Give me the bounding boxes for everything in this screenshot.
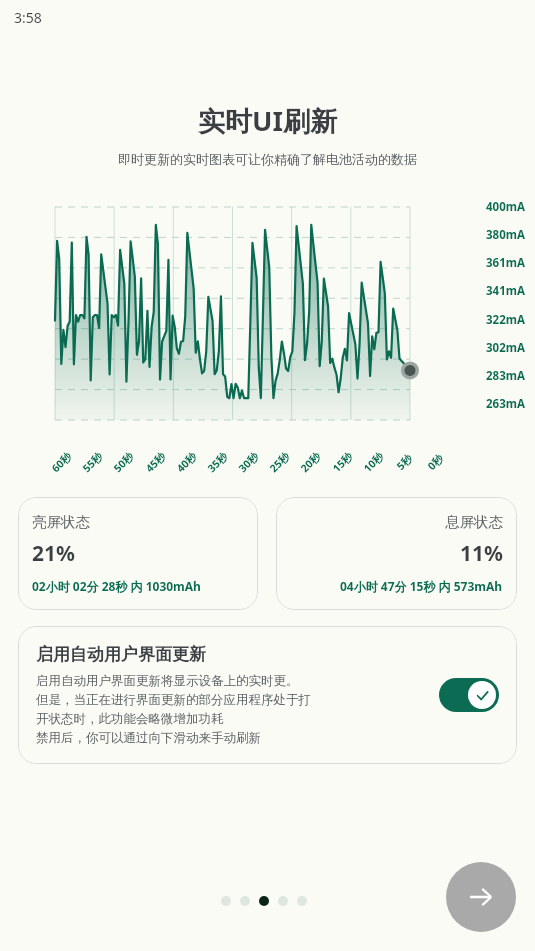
staticText: 5秒 bbox=[393, 451, 415, 473]
staticText: 341mA bbox=[486, 283, 525, 299]
button[interactable]: 息屏状态 bbox=[276, 497, 517, 610]
staticText: 283mA bbox=[486, 368, 525, 384]
staticText: 04小时 47分 15秒 内 573mAh bbox=[340, 578, 503, 594]
staticText: 263mA bbox=[486, 396, 525, 412]
staticText: 0秒 bbox=[424, 451, 446, 473]
button[interactable]: Next bbox=[446, 862, 516, 932]
button[interactable]: 亮屏状态 bbox=[18, 497, 258, 610]
staticText: 361mA bbox=[486, 255, 525, 271]
staticText: 45秒 bbox=[142, 449, 169, 475]
staticText: 302mA bbox=[486, 340, 525, 356]
staticText: 15秒 bbox=[329, 449, 356, 475]
staticText: 启用自动用户界面更新 bbox=[36, 644, 206, 665]
staticText: 21% bbox=[32, 539, 75, 568]
button[interactable]: Toggle automatic UI updates bbox=[439, 678, 499, 712]
staticText: 380mA bbox=[486, 227, 525, 243]
staticText: 20秒 bbox=[297, 449, 324, 475]
staticText: 50秒 bbox=[110, 449, 137, 475]
staticText: 02小时 02分 28秒 内 1030mAh bbox=[32, 578, 201, 594]
staticText: 35秒 bbox=[204, 449, 231, 475]
staticText: 40秒 bbox=[173, 449, 200, 475]
staticText: 60秒 bbox=[48, 449, 75, 475]
staticText: 30秒 bbox=[235, 449, 262, 475]
staticText: 启用自动用户界面更新将显示设备上的实时更。 但是，当正在进行界面更新的部分应用程… bbox=[36, 673, 311, 746]
staticText: 400mA bbox=[486, 199, 525, 215]
staticText: 息屏状态 bbox=[445, 513, 503, 531]
staticText: 55秒 bbox=[79, 449, 106, 475]
staticText: 亮屏状态 bbox=[32, 513, 90, 531]
staticText: 10秒 bbox=[360, 449, 387, 475]
staticText: 实时UI刷新 bbox=[0, 102, 535, 139]
staticText: 11% bbox=[460, 539, 503, 568]
staticText: 3:58 bbox=[14, 8, 42, 27]
staticText: 25秒 bbox=[266, 449, 293, 475]
staticText: 即时更新的实时图表可让你精确了解电池活动的数据 bbox=[14, 151, 521, 167]
staticText: 322mA bbox=[486, 312, 525, 328]
